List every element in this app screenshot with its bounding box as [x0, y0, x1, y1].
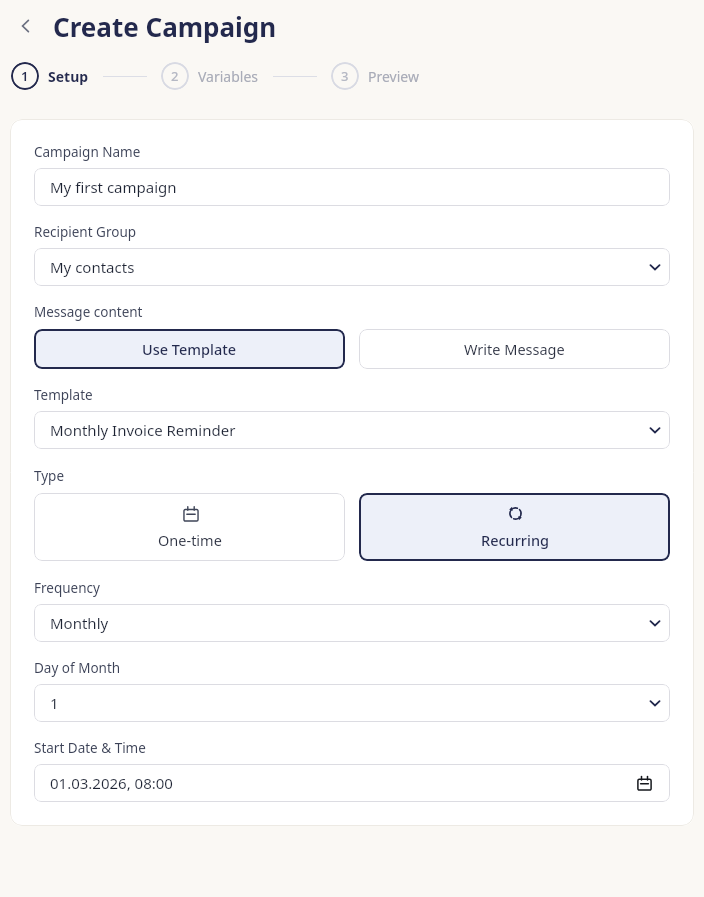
button[interactable]: 1 — [34, 684, 670, 722]
button[interactable]: 2 — [161, 62, 259, 90]
staticText: Monthly Invoice Reminder — [50, 420, 236, 440]
button[interactable]: Recurring — [359, 493, 670, 561]
staticText: Preview — [368, 67, 419, 86]
staticText: One-time — [158, 530, 222, 550]
staticText: Campaign Name — [34, 143, 141, 161]
button[interactable]: 3 — [331, 62, 419, 90]
staticText: Recurring — [481, 530, 549, 550]
staticText: Variables — [198, 67, 259, 86]
staticText: Type — [34, 467, 65, 485]
staticText: 2 — [171, 67, 179, 85]
button[interactable]: My contacts — [34, 248, 670, 286]
button[interactable]: Back — [8, 8, 44, 44]
staticText: Write Message — [464, 339, 565, 359]
staticText: 3 — [341, 67, 349, 85]
staticText: Template — [34, 386, 93, 404]
staticText: 1 — [21, 67, 29, 85]
staticText: Day of Month — [34, 659, 121, 677]
button[interactable]: Monthly — [34, 604, 670, 642]
button[interactable]: Monthly Invoice Reminder — [34, 411, 670, 449]
staticText: Use Template — [142, 339, 237, 359]
button[interactable]: 1 — [11, 62, 89, 90]
staticText: 1 — [50, 693, 59, 713]
button[interactable]: My first campaign — [34, 168, 670, 206]
button[interactable]: 01.03.2026, 08:00 — [34, 764, 670, 802]
staticText: Frequency — [34, 579, 100, 597]
button[interactable]: Write Message — [359, 329, 670, 369]
staticText: Message content — [34, 303, 143, 321]
button[interactable]: Pick date — [633, 772, 655, 794]
staticText: Setup — [48, 67, 89, 86]
staticText: 01.03.2026, 08:00 — [50, 773, 173, 793]
staticText: Start Date & Time — [34, 739, 146, 757]
staticText: Create Campaign — [53, 9, 277, 44]
button[interactable]: One-time — [34, 493, 345, 561]
staticText: My first campaign — [50, 177, 177, 197]
button[interactable]: Use Template — [34, 329, 345, 369]
staticText: My contacts — [50, 257, 135, 277]
staticText: Monthly — [50, 613, 109, 633]
staticText: Recipient Group — [34, 223, 137, 241]
